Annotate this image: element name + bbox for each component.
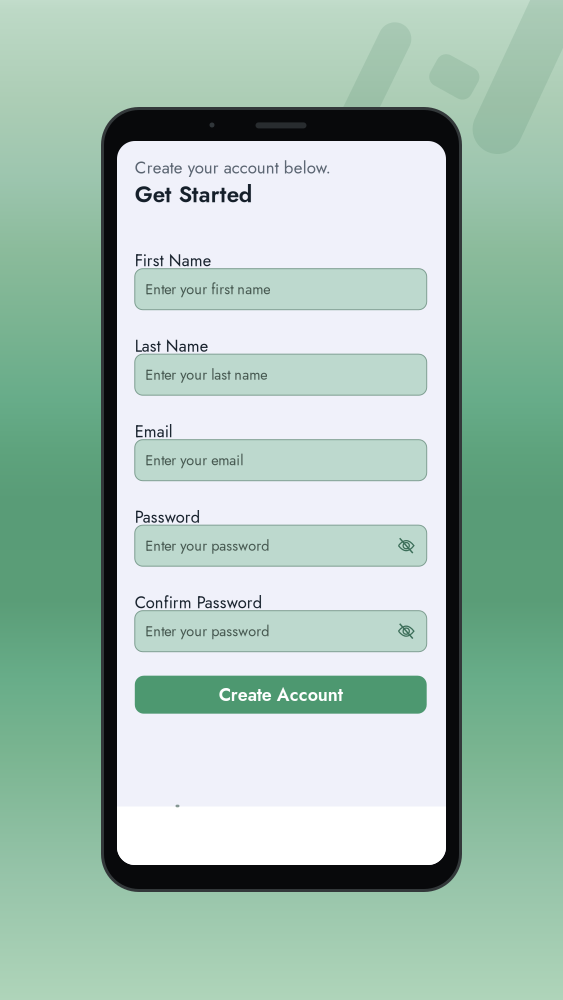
staticText: First Name: [135, 249, 211, 272]
staticText: Enter your last name: [145, 364, 267, 385]
staticText: Enter your first name: [145, 279, 270, 300]
button[interactable]: Enter your password: [135, 611, 427, 652]
staticText: Enter your email: [145, 450, 243, 471]
staticText: Create Account: [219, 682, 343, 708]
staticText: Last Name: [135, 334, 208, 358]
staticText: Confirm Password: [135, 591, 262, 614]
button[interactable]: Enter your last name: [135, 354, 427, 395]
staticText: Password: [135, 505, 200, 529]
staticText: Enter your password: [145, 535, 269, 556]
staticText: Email: [135, 420, 173, 443]
staticText: Enter your password: [145, 621, 269, 642]
button[interactable]: Enter your password: [135, 525, 427, 566]
button[interactable]: Enter your first name: [135, 269, 427, 310]
staticText: Get Started: [135, 178, 252, 211]
button[interactable]: Enter your email: [135, 440, 427, 481]
staticText: Create your account below.: [135, 155, 331, 180]
button[interactable]: Create Account: [135, 676, 427, 714]
